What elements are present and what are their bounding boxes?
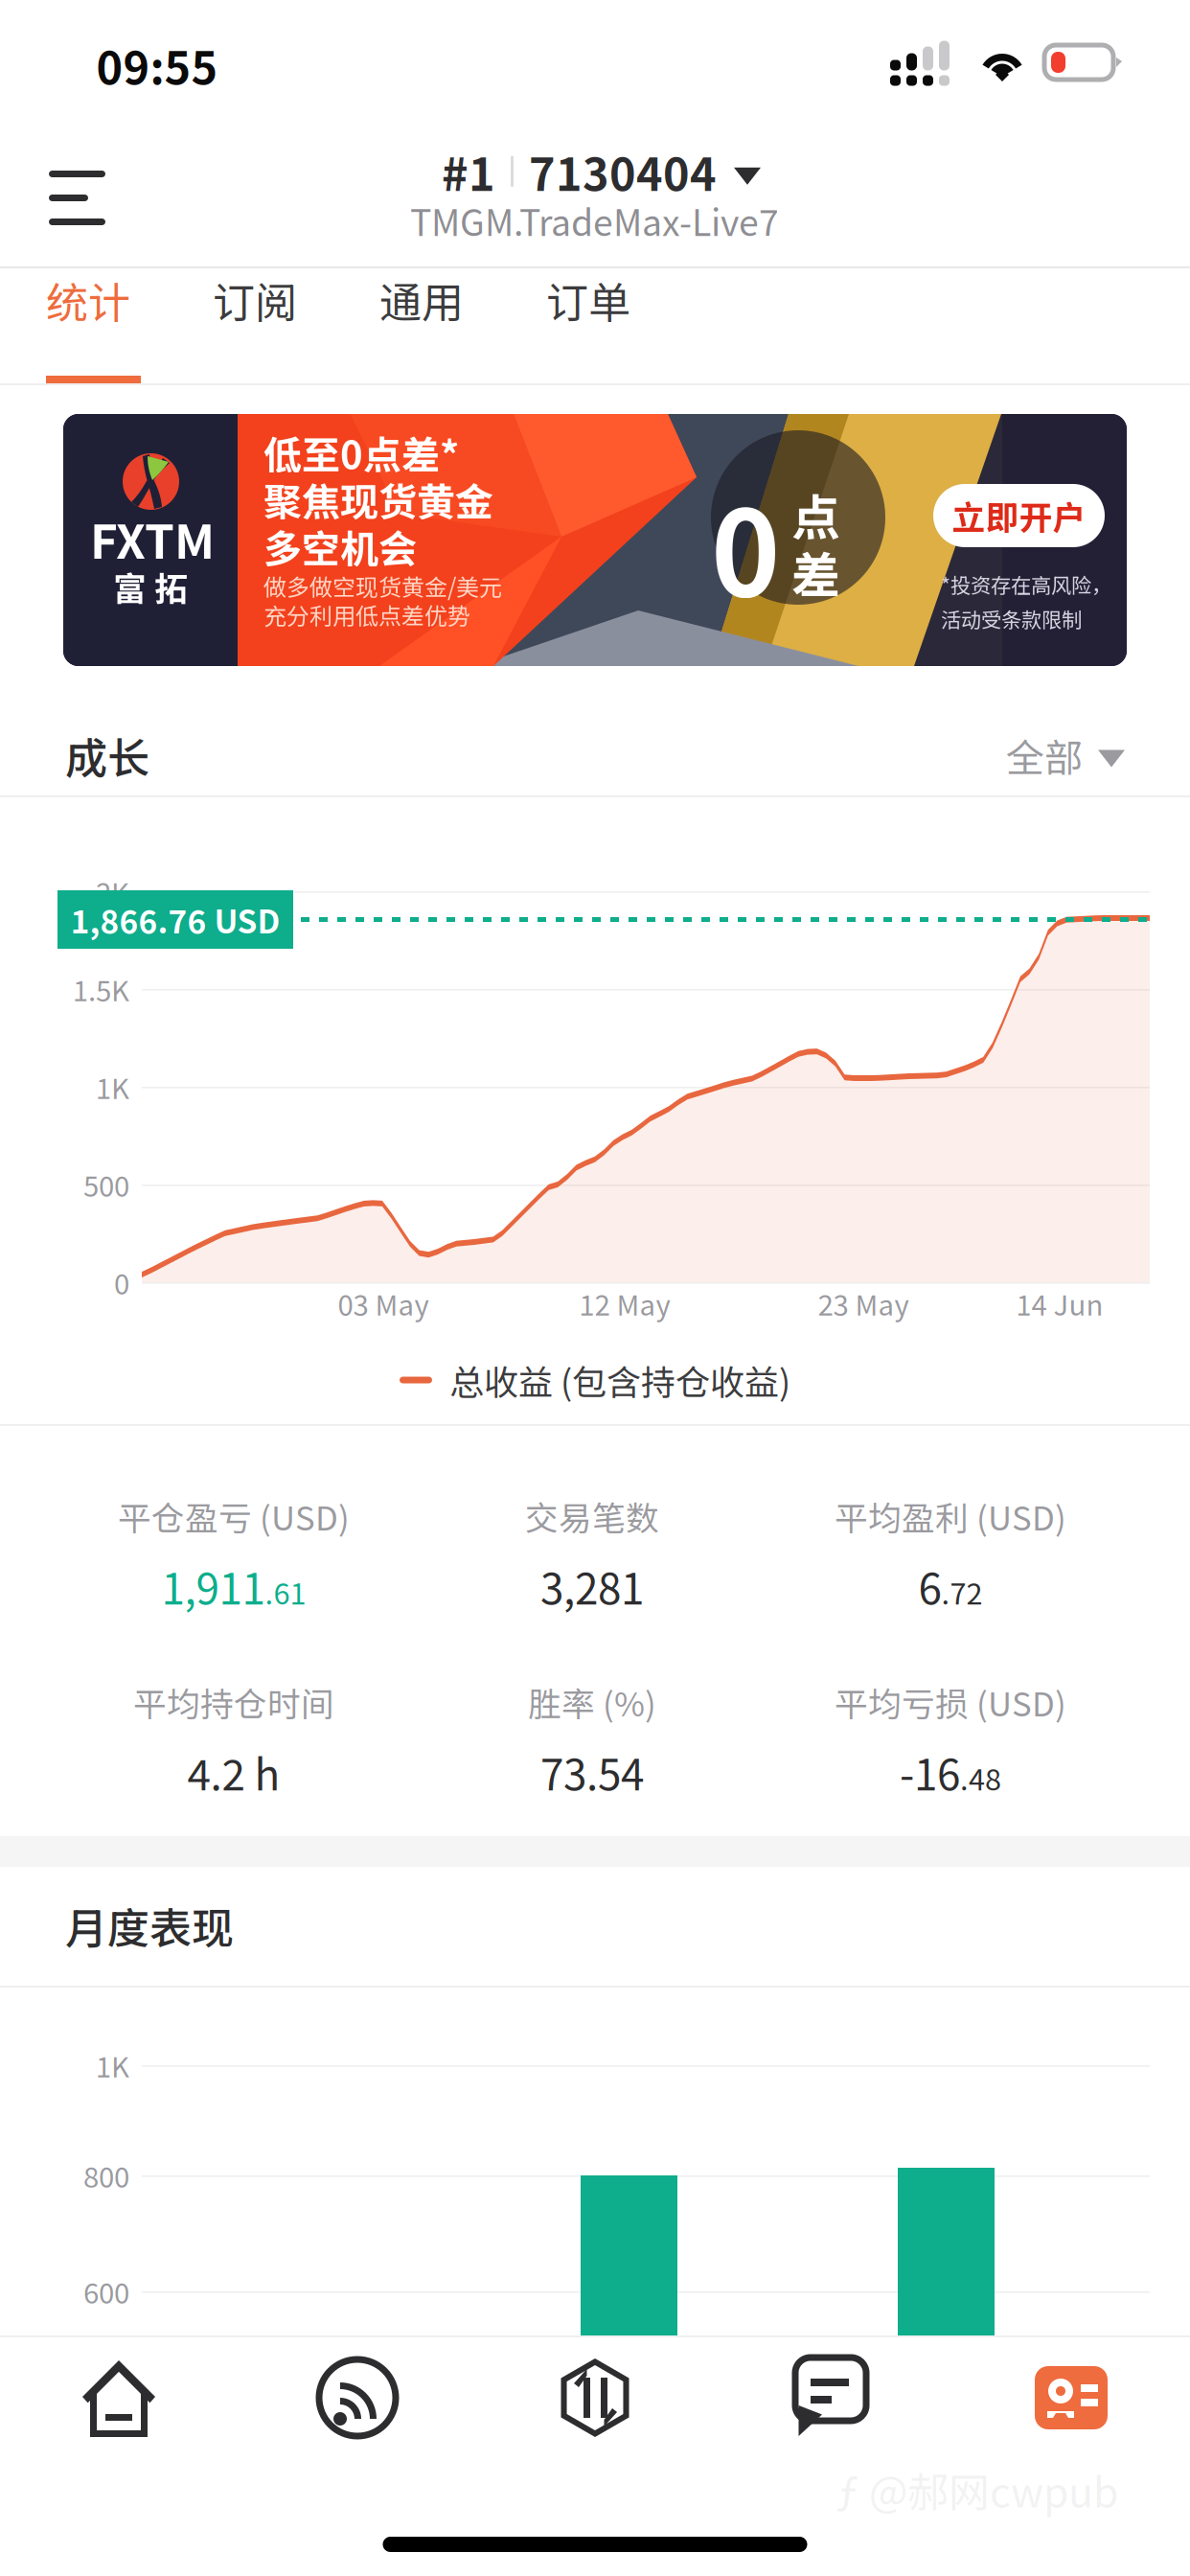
button[interactable]: Feed (0, 0, 1190, 2576)
staticText: 73.54 (540, 1741, 644, 1802)
staticText: 1K (96, 2045, 129, 2086)
staticText: 1.5K (73, 969, 129, 1009)
staticText: 月度表现 (65, 1895, 234, 1956)
staticText: 1,911 (161, 1555, 265, 1617)
button[interactable]: Trade (0, 0, 1190, 2576)
staticText: *投资存在高风险， (941, 569, 1111, 599)
button[interactable]: 订单 (546, 248, 642, 365)
staticText: ƒ @郝网cwpub (836, 2460, 1118, 2519)
button[interactable]: #1 (403, 150, 787, 256)
button[interactable]: 统计 (46, 248, 142, 365)
staticText: FXTM (90, 504, 215, 573)
staticText: 平均持仓时间 (133, 1678, 334, 1726)
button[interactable]: 通用 (379, 248, 475, 365)
staticText: 立即开户 (952, 492, 1086, 540)
staticText: -16 (900, 1741, 960, 1802)
staticText: 2K (96, 871, 129, 912)
staticText: 订单 (546, 269, 630, 330)
staticText: 平仓盈亏 (USD) (118, 1492, 350, 1540)
staticText: 03 May (338, 1283, 429, 1324)
staticText: 活动受条款限制 (941, 604, 1082, 633)
staticText: 平均亏损 (USD) (835, 1678, 1066, 1726)
staticText: 通用 (379, 269, 464, 330)
staticText: 充分利用低点差优势 (263, 598, 470, 631)
staticText: #1 (442, 139, 495, 204)
staticText: 4.2 h (187, 1741, 280, 1802)
staticText: 14 Jun (1016, 1283, 1103, 1324)
staticText: 差 (791, 537, 840, 607)
staticText: .72 (941, 1570, 983, 1613)
staticText: 全部 (1006, 727, 1083, 783)
staticText: 聚焦现货黄金 (263, 471, 493, 527)
staticText: 1K (96, 1066, 129, 1107)
button[interactable]: Messages (0, 0, 1190, 2576)
staticText: 订阅 (213, 269, 297, 330)
button[interactable]: Profile (0, 0, 1190, 2576)
button[interactable]: 全部 (0, 0, 1190, 2576)
staticText: 胜率 (%) (528, 1678, 656, 1726)
staticText: 0 (114, 1262, 129, 1303)
staticText: 09:55 (96, 33, 218, 98)
staticText: 6 (918, 1555, 941, 1617)
staticText: 点 (791, 479, 840, 550)
staticText: 多空机会 (263, 518, 417, 574)
button[interactable]: 订阅 (213, 248, 309, 365)
staticText: .48 (960, 1756, 1001, 1799)
staticText: 0 (711, 460, 780, 630)
staticText: 富 拓 (113, 563, 188, 611)
button[interactable]: Menu (0, 0, 1190, 2576)
staticText: 12 May (579, 1283, 670, 1324)
staticText: 7130404 (529, 139, 717, 204)
staticText: 23 May (818, 1283, 909, 1324)
staticText: 低至0点差* (263, 425, 459, 480)
staticText: 1,866.76 USD (70, 896, 280, 943)
staticText: 成长 (65, 725, 149, 786)
staticText: 总收益 (包含持仓收益) (449, 1355, 790, 1405)
staticText: 600 (83, 2271, 129, 2312)
staticText: 3,281 (540, 1555, 644, 1617)
staticText: 做多做空现货黄金/美元 (263, 569, 502, 603)
staticText: 平均盈利 (USD) (835, 1492, 1066, 1540)
button[interactable]: FXTM (63, 414, 1127, 666)
staticText: TMGM.TradeMax-Live7 (410, 195, 779, 246)
staticText: 交易笔数 (525, 1492, 659, 1540)
button[interactable]: Home (0, 0, 1190, 2576)
staticText: .61 (265, 1570, 306, 1613)
staticText: 500 (83, 1164, 129, 1205)
staticText: 800 (83, 2155, 129, 2196)
staticText: 统计 (46, 269, 130, 330)
